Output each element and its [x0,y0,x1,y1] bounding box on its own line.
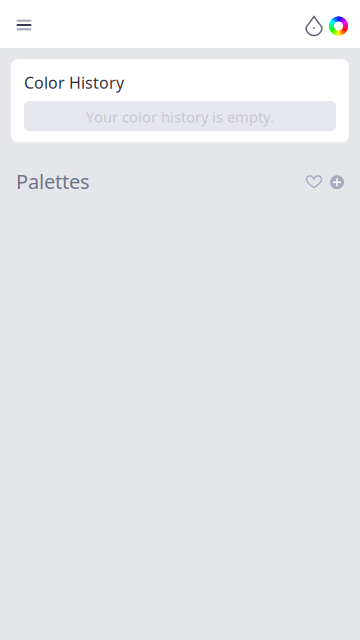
button[interactable]: Colour wheel [328,9,349,43]
button[interactable]: Menu [8,9,40,43]
button[interactable]: Favourites [303,170,325,192]
staticText: Palettes [16,168,90,195]
button[interactable]: Add palette [325,170,347,192]
staticText: Color History [24,72,124,93]
staticText: Your color history is empty. [86,107,274,126]
button[interactable]: Pick colour [300,9,328,43]
